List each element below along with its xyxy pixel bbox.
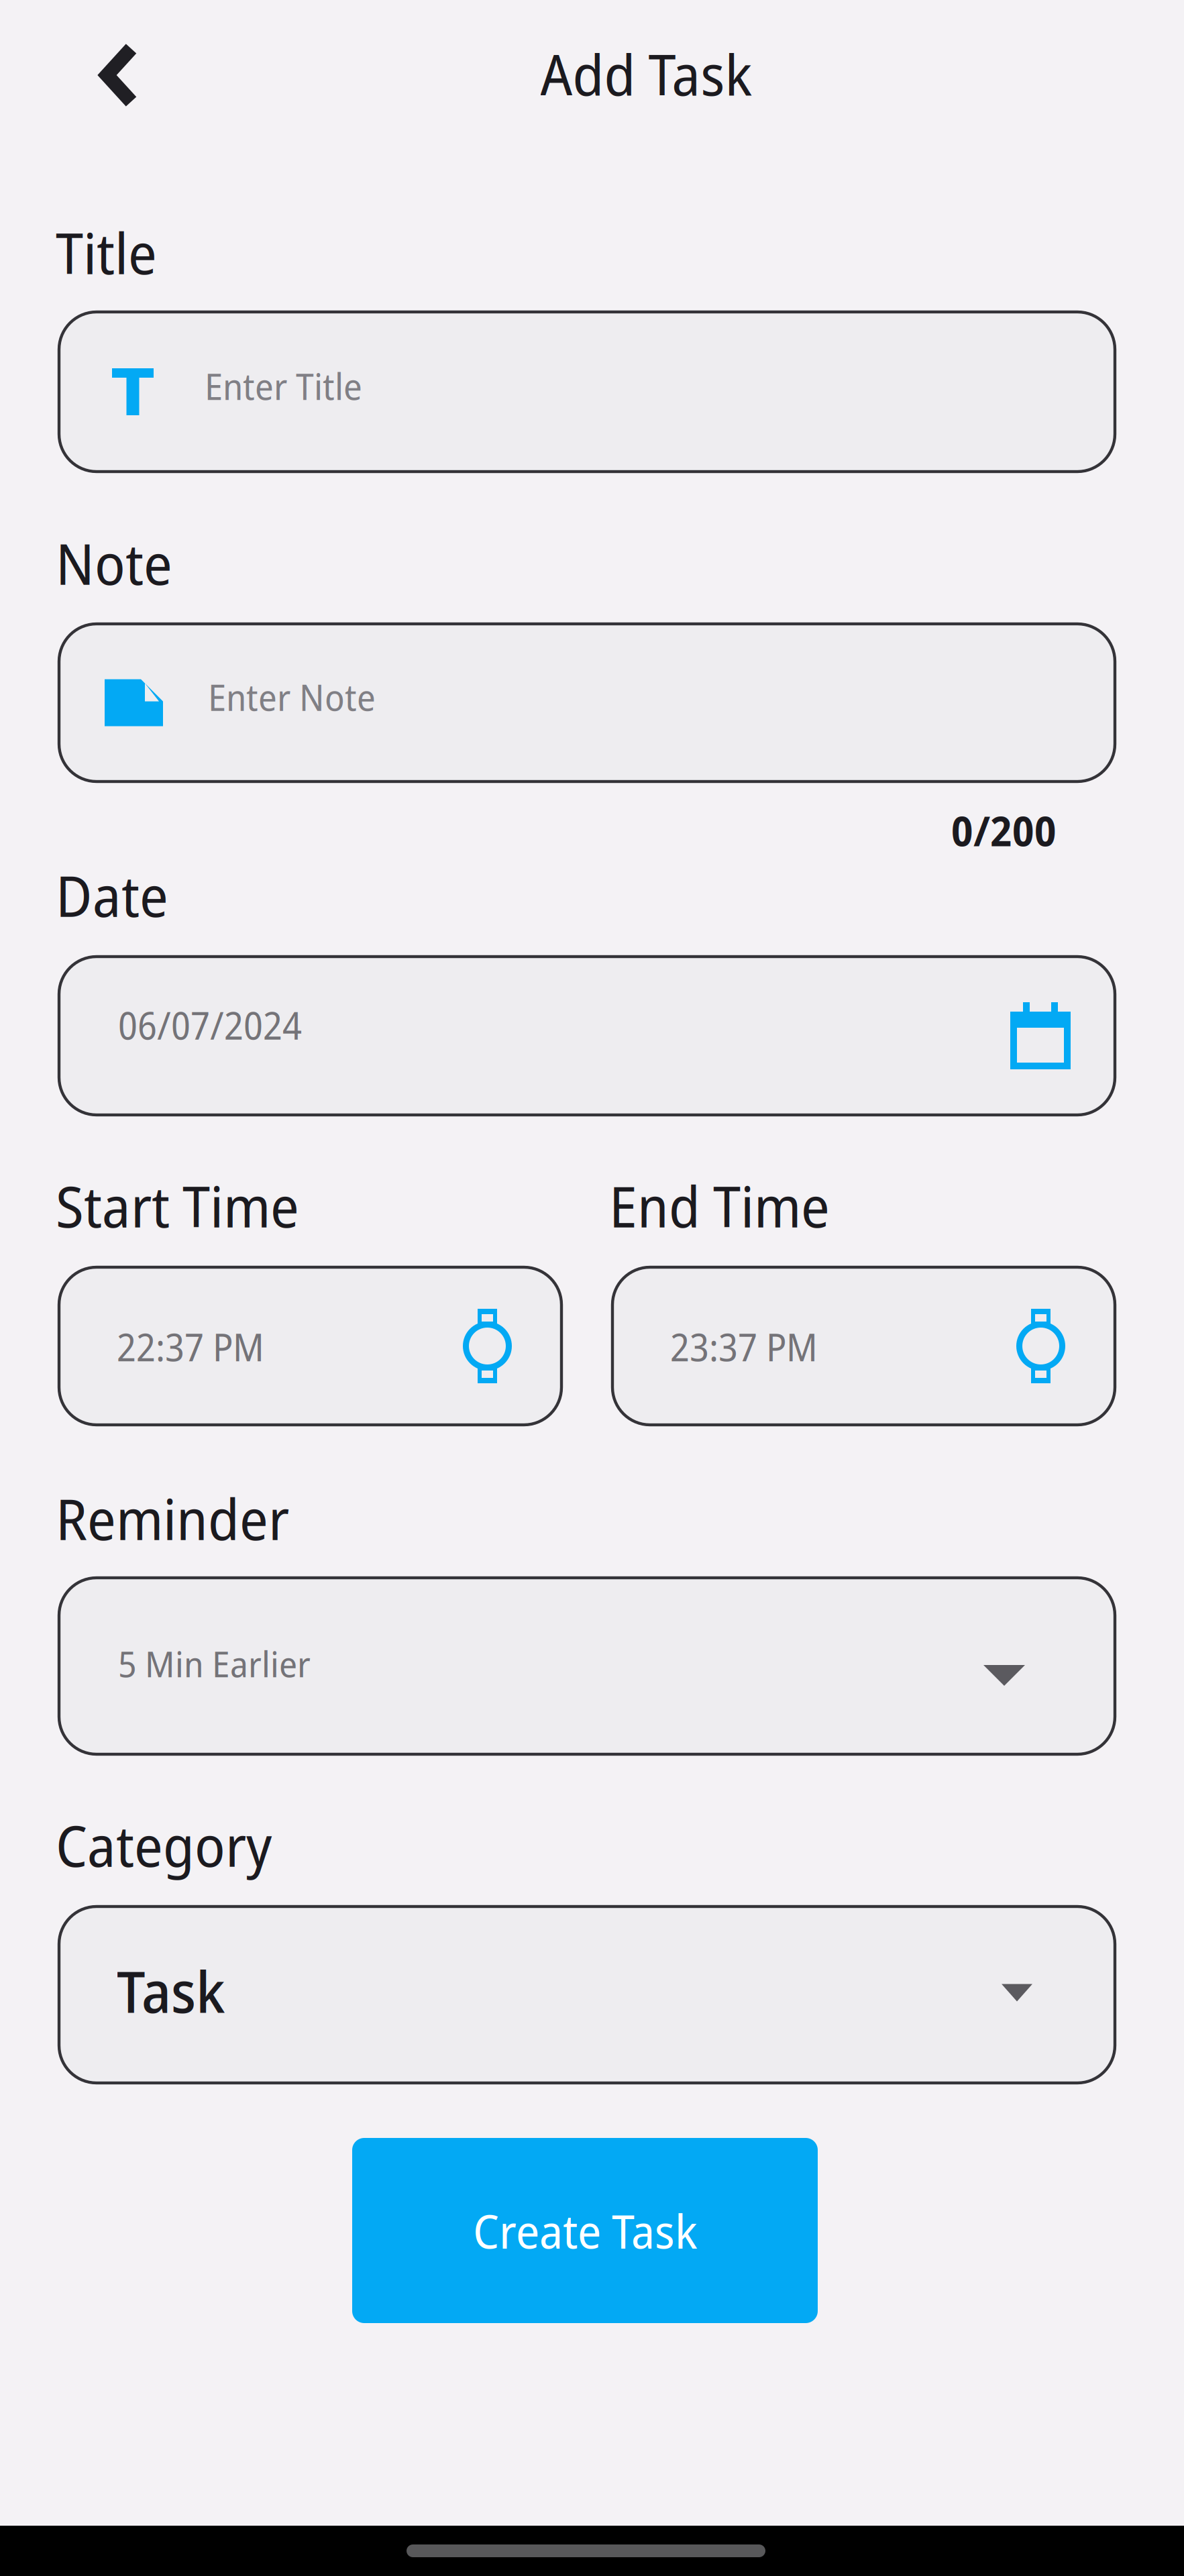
button[interactable]: Task [59, 1907, 1115, 2083]
button[interactable]: 06/07/2024 [59, 957, 1115, 1115]
staticText: Enter Note [208, 672, 376, 722]
staticText: 0/200 [951, 802, 1057, 858]
staticText: Task [117, 1952, 225, 2030]
button[interactable]: Enter Note [59, 624, 1115, 782]
button[interactable]: Back [100, 42, 138, 109]
staticText: Date [56, 857, 168, 933]
staticText: Reminder [56, 1480, 289, 1557]
button[interactable]: 23:37 PM [612, 1267, 1115, 1425]
staticText: End Time [609, 1167, 830, 1244]
staticText: Enter Title [205, 361, 362, 411]
button[interactable]: Create Task [352, 2138, 818, 2323]
staticText: Note [56, 525, 172, 601]
button[interactable]: Enter Title [59, 312, 1115, 472]
staticText: Add Task [540, 35, 752, 112]
staticText: 06/07/2024 [118, 999, 302, 1051]
button[interactable]: 22:37 PM [59, 1267, 561, 1425]
staticText: 22:37 PM [117, 1321, 264, 1372]
staticText: Category [56, 1807, 272, 1883]
button[interactable]: 5 Min Earlier [59, 1578, 1115, 1754]
staticText: 5 Min Earlier [118, 1639, 311, 1688]
staticText: Title [56, 214, 157, 291]
staticText: Start Time [56, 1167, 299, 1244]
staticText: 23:37 PM [670, 1321, 818, 1372]
staticText: Create Task [473, 2199, 697, 2262]
